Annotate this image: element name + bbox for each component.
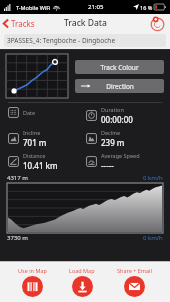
button[interactable]: Incline: [7, 129, 85, 148]
staticText: 0 km/h: [143, 174, 163, 182]
button[interactable]: Date: [7, 106, 85, 119]
staticText: Incline: [23, 129, 41, 136]
staticText: 16 %: [140, 4, 153, 11]
staticText: -----: [101, 160, 114, 171]
button[interactable]: Use in Map: [14, 265, 51, 299]
staticText: Share + Email: [117, 267, 152, 274]
staticText: 10.41 km: [23, 160, 58, 171]
staticText: 00:00:00: [101, 114, 133, 125]
button[interactable]: Track Colour: [75, 60, 164, 74]
staticText: 0 km/h: [143, 234, 163, 242]
button[interactable]: Duration: [85, 106, 163, 125]
staticText: 21:05: [88, 3, 104, 11]
staticText: Date: [23, 109, 36, 116]
staticText: Load Map: [69, 267, 95, 274]
staticText: Duration: [101, 106, 124, 113]
button[interactable]: Share + Email: [113, 265, 156, 299]
button[interactable]: Map preview: [6, 54, 68, 98]
staticText: 3PASSES_4: Tengboche - Dingboche: [7, 36, 116, 45]
staticText: Use in Map: [18, 267, 47, 274]
staticText: Decline: [101, 129, 121, 136]
staticText: 701 m: [23, 137, 47, 148]
button[interactable]: Average Speed: [85, 152, 163, 171]
staticText: 4317 m: [7, 174, 28, 182]
staticText: Direction: [106, 82, 134, 91]
button[interactable]: Decline: [85, 129, 163, 148]
staticText: 239 m: [101, 137, 125, 148]
staticText: Average Speed: [101, 152, 140, 159]
button[interactable]: Load Map: [65, 265, 99, 299]
staticText: Distance: [23, 152, 46, 159]
button[interactable]: 3PASSES_4: Tengboche - Dingboche: [4, 34, 166, 47]
staticText: T-Mobile WiFi: [16, 4, 51, 11]
staticText: 3730 m: [7, 234, 28, 242]
staticText: Track Data: [64, 17, 107, 29]
staticText: Tracks: [11, 18, 35, 29]
button[interactable]: Distance: [7, 152, 85, 171]
button[interactable]: Direction: [75, 79, 164, 93]
staticText: Track Colour: [100, 63, 139, 72]
button[interactable]: Elevation profile: [7, 183, 163, 233]
button[interactable]: Add waypoint: [150, 16, 165, 31]
button[interactable]: Tracks: [0, 16, 39, 31]
